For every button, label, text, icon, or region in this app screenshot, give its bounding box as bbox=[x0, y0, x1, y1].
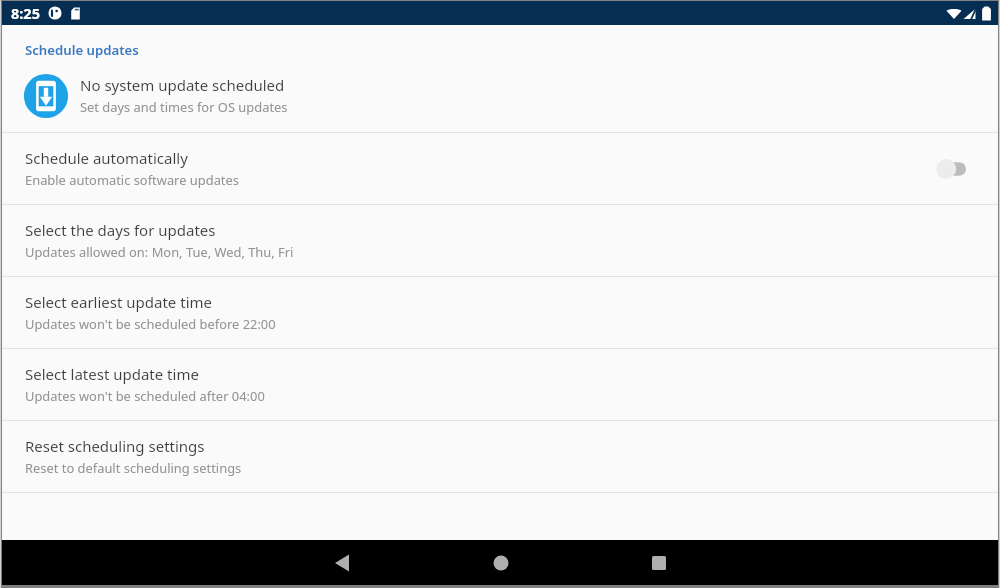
staticText: Schedule automatically bbox=[25, 148, 188, 168]
button[interactable]: Select latest update time bbox=[2, 349, 998, 420]
staticText: Updates won't be scheduled before 22:00 bbox=[25, 315, 276, 333]
button[interactable]: Home bbox=[460, 540, 542, 585]
button[interactable]: Select the days for updates bbox=[2, 205, 998, 276]
staticText: Enable automatic software updates bbox=[25, 171, 239, 189]
staticText: Updates won't be scheduled after 04:00 bbox=[25, 387, 265, 405]
staticText: Select latest update time bbox=[25, 364, 199, 384]
staticText: Set days and times for OS updates bbox=[80, 98, 288, 116]
button[interactable]: Reset scheduling settings bbox=[2, 421, 998, 492]
button[interactable]: Schedule automatically bbox=[2, 133, 998, 204]
staticText: Select earliest update time bbox=[25, 292, 212, 312]
staticText: Updates allowed on: Mon, Tue, Wed, Thu, … bbox=[25, 243, 294, 261]
staticText: No system update scheduled bbox=[80, 75, 285, 95]
staticText: Reset to default scheduling settings bbox=[25, 459, 242, 477]
button[interactable]: Select earliest update time bbox=[2, 277, 998, 348]
staticText: Reset scheduling settings bbox=[25, 436, 205, 456]
button[interactable]: Recents bbox=[618, 540, 700, 585]
button[interactable]: Back bbox=[301, 540, 382, 585]
staticText: 8:25 bbox=[11, 3, 40, 23]
button[interactable]: Schedule automatically bbox=[930, 154, 974, 184]
staticText: Select the days for updates bbox=[25, 220, 216, 240]
staticText: Schedule updates bbox=[25, 41, 139, 59]
button[interactable]: No system update scheduled bbox=[2, 59, 998, 132]
